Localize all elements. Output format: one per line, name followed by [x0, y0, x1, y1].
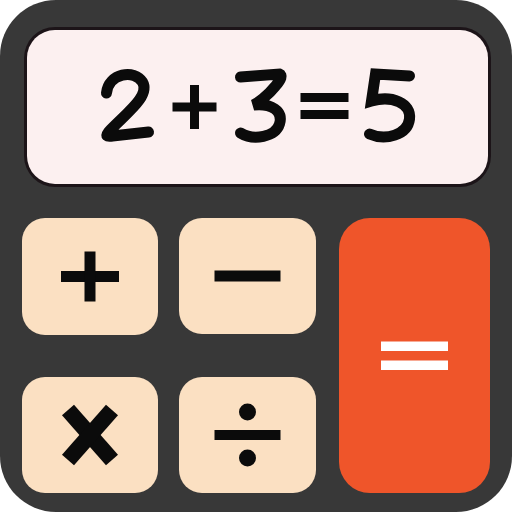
button[interactable]: Divide [179, 377, 316, 493]
button[interactable]: Plus [22, 218, 158, 335]
button[interactable]: Minus [179, 218, 316, 334]
button[interactable]: Multiply [22, 377, 158, 493]
button[interactable]: Calculator display, 2 + 3 = 5 [24, 27, 491, 187]
button[interactable]: Equals [339, 218, 490, 493]
